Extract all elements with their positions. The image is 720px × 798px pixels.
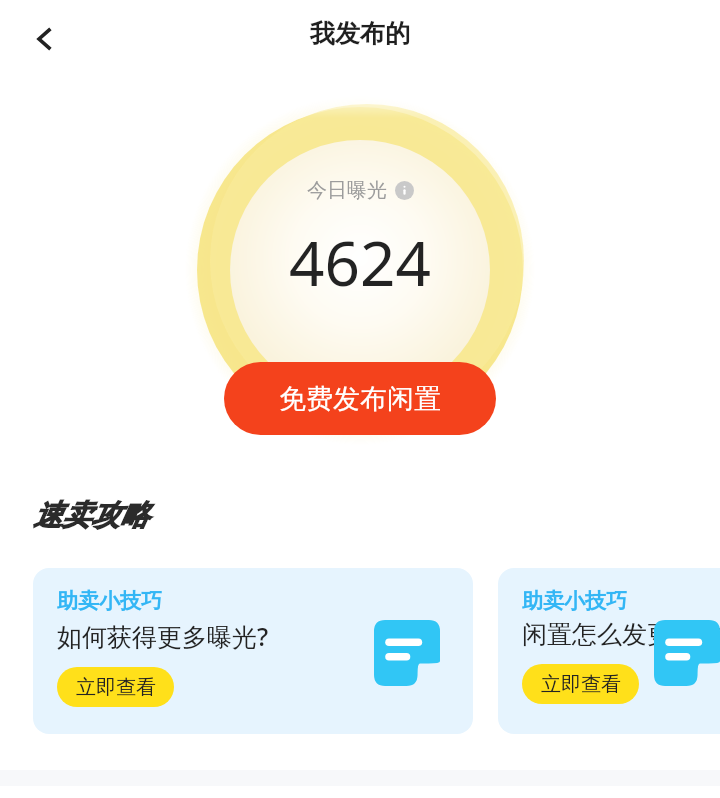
staticText: 速卖攻略 — [33, 497, 149, 534]
button[interactable]: 助卖小技巧 — [33, 568, 473, 734]
staticText: 闲置怎么发更好卖 — [522, 619, 720, 650]
staticText: 如何获得更多曝光? — [57, 619, 269, 653]
button[interactable]: 今日曝光 — [307, 178, 414, 203]
button[interactable]: Back — [14, 8, 76, 70]
staticText: 我发布的 — [310, 18, 410, 49]
button[interactable]: 助卖小技巧 — [498, 568, 720, 734]
button[interactable]: 立即查看 — [57, 667, 174, 707]
staticText: 立即查看 — [541, 672, 621, 697]
staticText: 今日曝光 — [307, 178, 387, 203]
staticText: 免费发布闲置 — [279, 382, 441, 416]
button[interactable]: 免费发布闲置 — [224, 362, 496, 435]
staticText: 助卖小技巧 — [57, 588, 162, 614]
staticText: 助卖小技巧 — [522, 588, 627, 614]
button[interactable]: 立即查看 — [522, 664, 639, 704]
staticText: 立即查看 — [76, 675, 156, 700]
staticText: 4624 — [289, 220, 431, 304]
